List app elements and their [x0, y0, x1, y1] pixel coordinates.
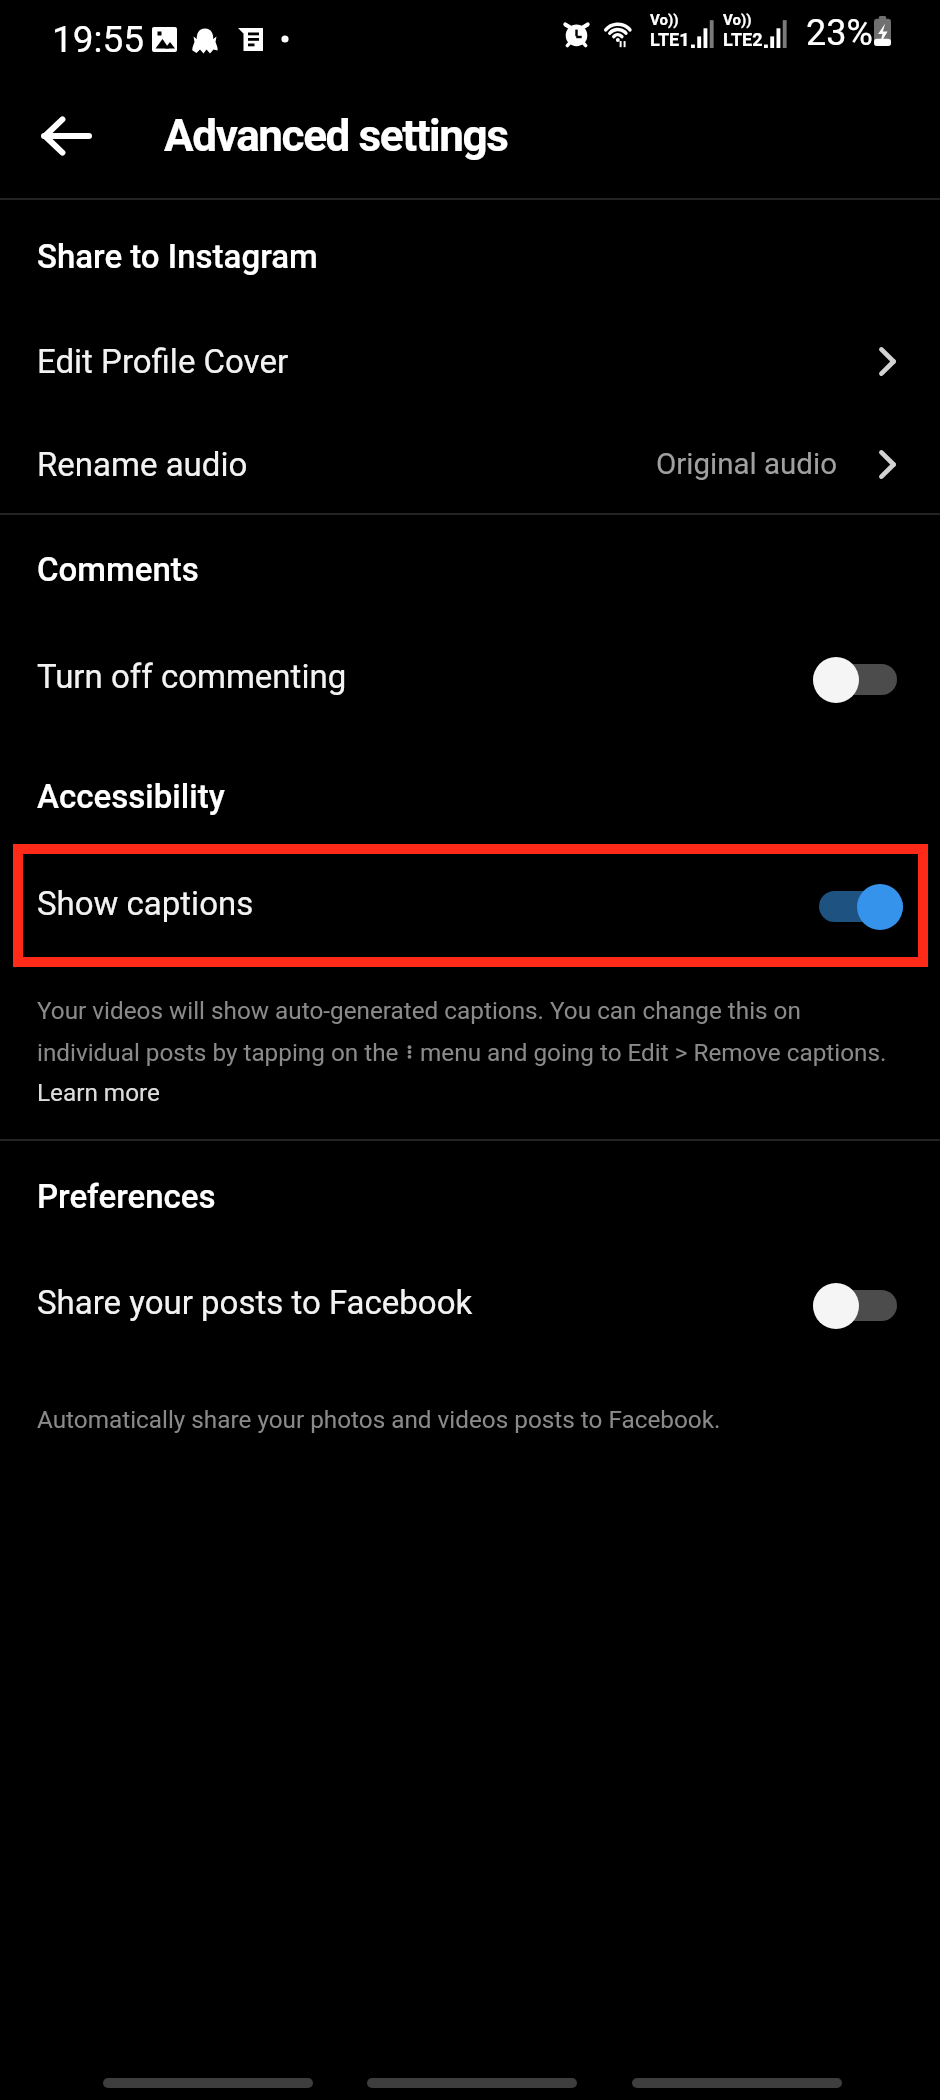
- button[interactable]: Rename audio: [0, 414, 940, 514]
- staticText: Preferences: [37, 1177, 216, 1216]
- button[interactable]: Learn more: [37, 1078, 160, 1106]
- staticText: Comments: [37, 550, 199, 589]
- staticText: Turn off commenting: [37, 657, 347, 696]
- staticText: individual posts by tapping on the: [37, 1038, 405, 1066]
- staticText: Share your posts to Facebook: [37, 1283, 473, 1322]
- staticText: 23%: [806, 12, 873, 54]
- staticText: Advanced settings: [164, 110, 508, 162]
- staticText: Rename audio: [37, 445, 248, 484]
- staticText: Show captions: [37, 884, 254, 923]
- button[interactable]: Back: [24, 94, 108, 178]
- staticText: LTE2: [723, 29, 763, 50]
- staticText: Automatically share your photos and vide…: [37, 1405, 721, 1433]
- button[interactable]: Turn off commenting: [0, 621, 940, 731]
- staticText: Original audio: [656, 447, 837, 482]
- staticText: 19:55: [52, 18, 145, 61]
- button[interactable]: Share your posts to Facebook: [0, 1247, 940, 1357]
- button[interactable]: Show captions: [0, 848, 940, 958]
- staticText: Accessibility: [37, 777, 225, 816]
- staticText: Edit Profile Cover: [37, 342, 289, 381]
- staticText: menu and going to Edit > Remove captions…: [414, 1038, 887, 1066]
- staticText: Share to Instagram: [37, 237, 318, 276]
- staticText: Vo)): [650, 11, 679, 29]
- staticText: Vo)): [723, 11, 752, 29]
- staticText: Your videos will show auto-generated cap…: [37, 996, 801, 1024]
- button[interactable]: Edit Profile Cover: [0, 311, 940, 411]
- staticText: LTE1: [650, 29, 690, 50]
